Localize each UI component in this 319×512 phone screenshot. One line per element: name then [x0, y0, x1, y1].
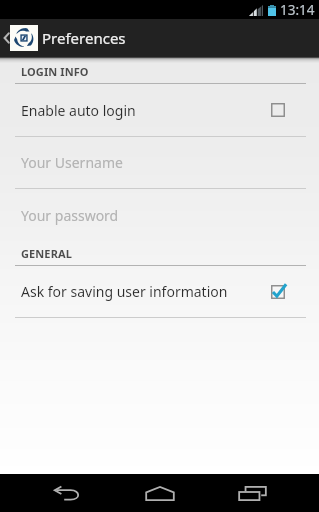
staticText: 13:14 — [280, 1, 315, 19]
button[interactable]: Recent apps — [206, 474, 299, 512]
staticText: LOGIN INFO — [21, 64, 89, 79]
button[interactable]: Back — [20, 474, 113, 512]
staticText: GENERAL — [21, 246, 72, 261]
button[interactable]: Navigate up — [0, 25, 38, 51]
button[interactable]: Your Username — [0, 137, 319, 188]
staticText: Preferences — [42, 28, 126, 48]
other: Navigate up — [1, 31, 10, 45]
staticText: Ask for saving user information — [21, 282, 271, 301]
staticText: Your password — [21, 206, 119, 225]
button[interactable]: Home — [113, 474, 206, 512]
button[interactable]: Ask for saving user information — [0, 266, 319, 317]
button[interactable]: Enable auto login — [0, 84, 319, 136]
button[interactable]: Your password — [0, 189, 319, 241]
staticText: Your Username — [21, 153, 123, 172]
staticText: Enable auto login — [21, 101, 271, 120]
